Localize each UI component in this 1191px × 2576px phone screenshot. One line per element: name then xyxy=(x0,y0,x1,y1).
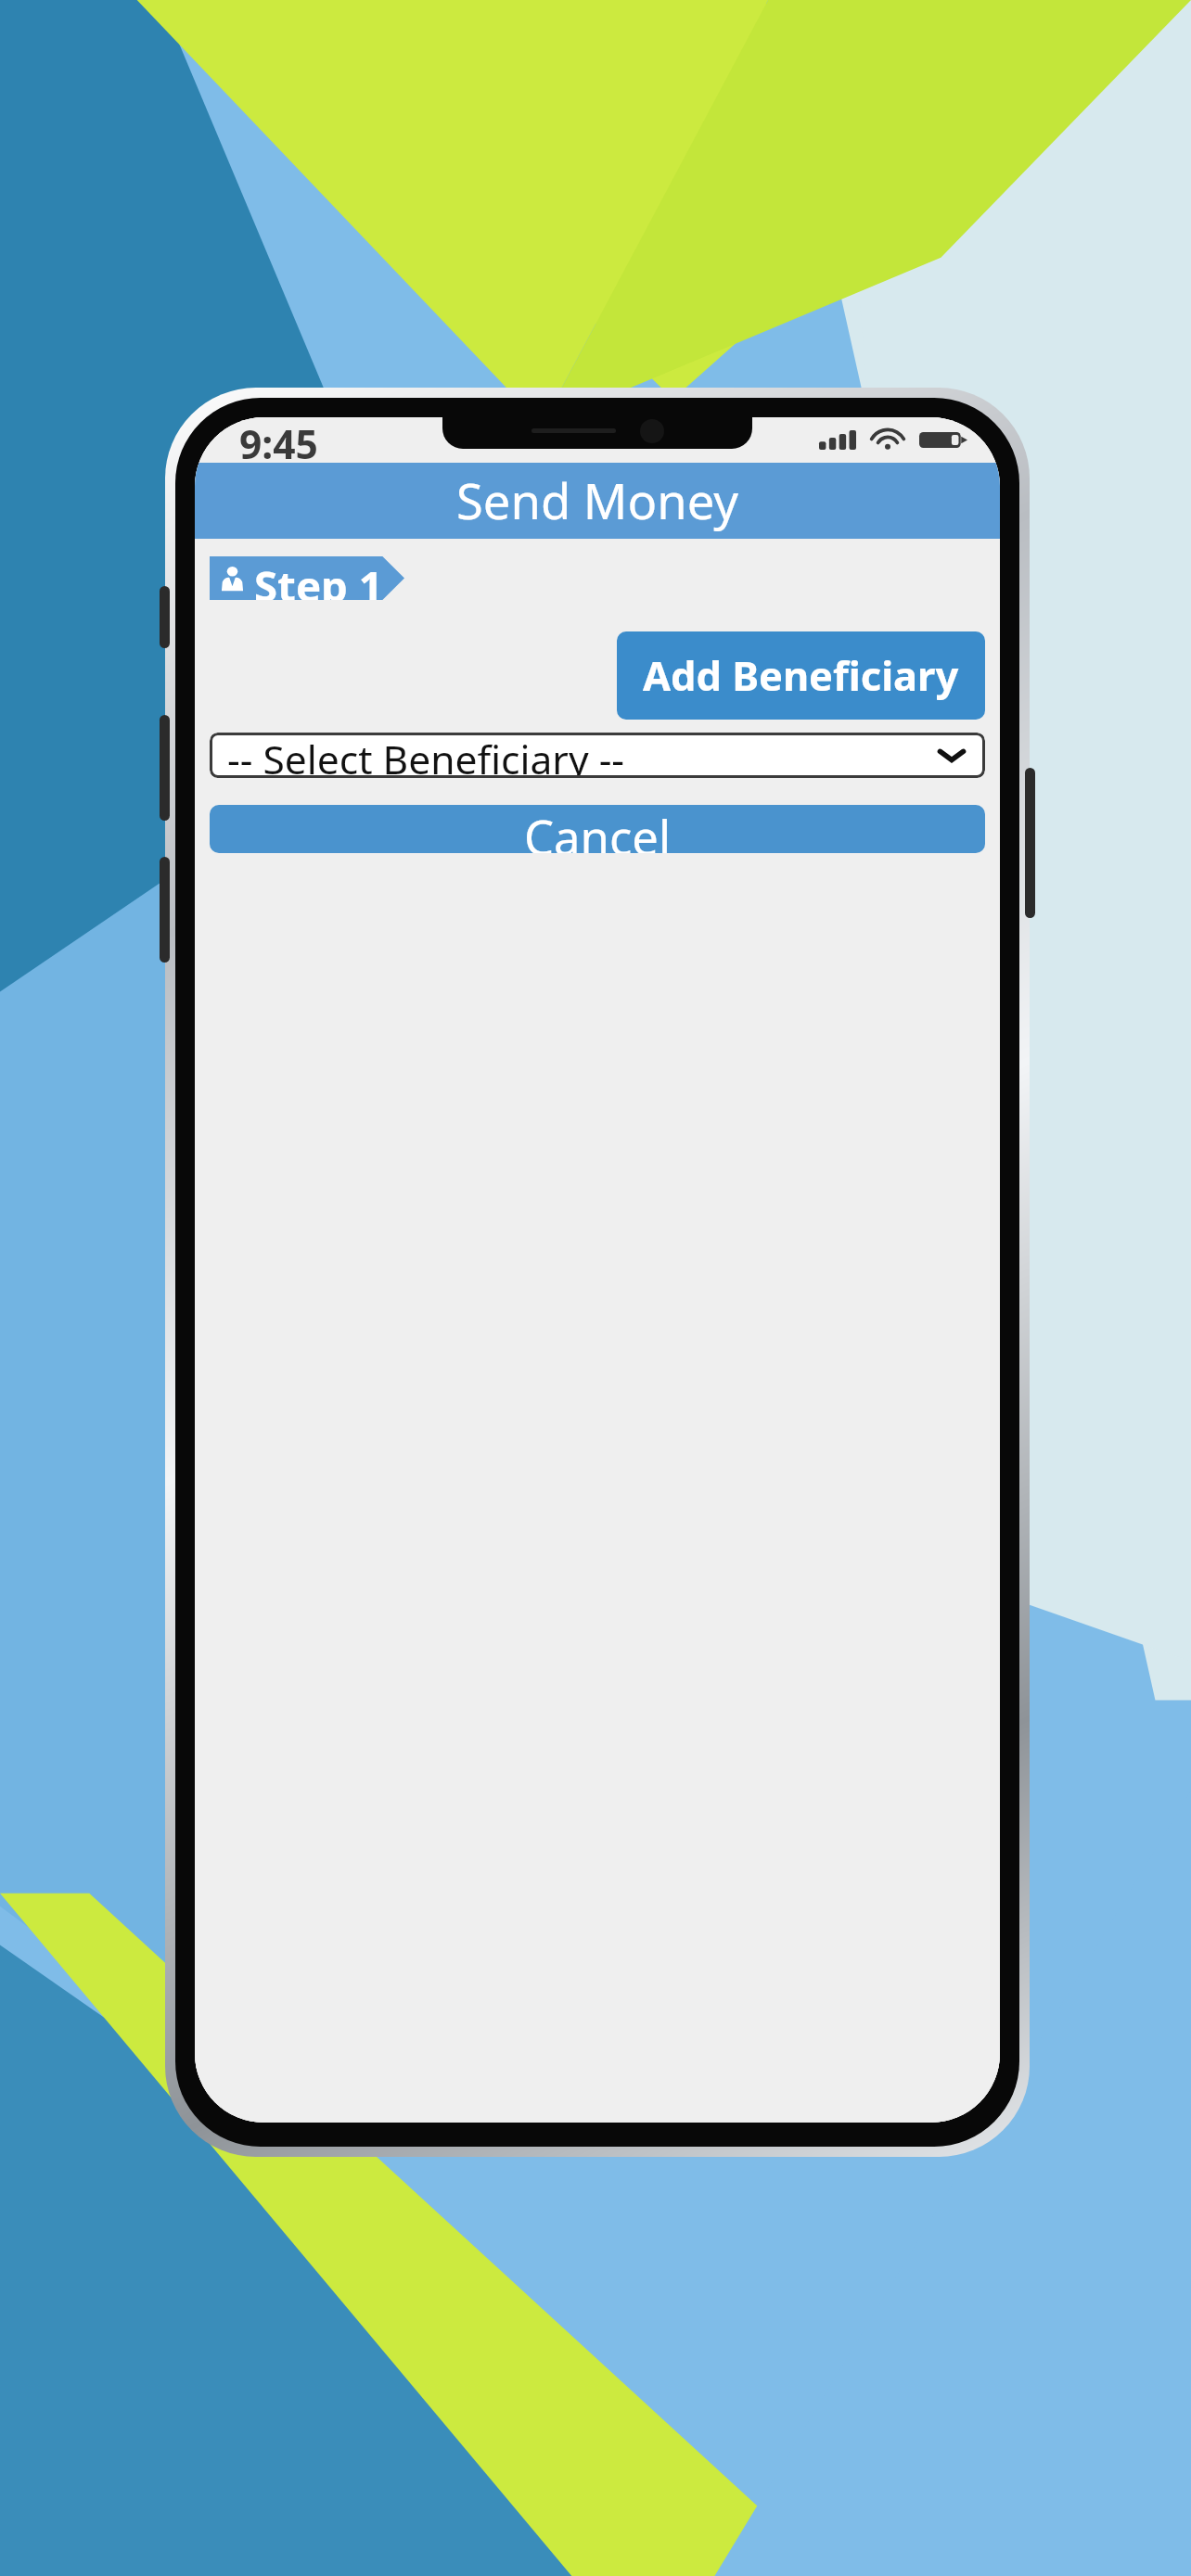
staticText: Send Money xyxy=(456,467,738,534)
button[interactable]: Add Beneficiary xyxy=(617,631,985,720)
staticText: Step 1 of 3 xyxy=(254,556,404,600)
staticText: Cancel xyxy=(524,805,672,853)
button[interactable]: Cancel xyxy=(210,805,985,853)
button[interactable]: -- Select Beneficiary -- xyxy=(210,733,985,778)
staticText: Add Beneficiary xyxy=(643,648,959,703)
staticText: 9:45 xyxy=(239,417,318,463)
staticText: -- Select Beneficiary -- xyxy=(227,733,625,778)
button[interactable]: Step 1 of 3 xyxy=(210,556,404,600)
